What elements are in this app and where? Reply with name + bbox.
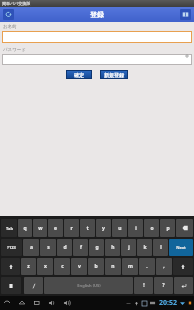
button[interactable]: .: [139, 258, 155, 275]
button[interactable]: h: [105, 239, 120, 256]
staticText: u: [118, 225, 122, 232]
staticText: t: [86, 225, 89, 232]
staticText: お名前: [3, 24, 17, 30]
button[interactable]: [2, 31, 192, 43]
staticText: i: [135, 225, 137, 232]
staticText: o: [150, 225, 154, 232]
button[interactable]: p: [160, 219, 175, 237]
button[interactable]: f: [73, 239, 88, 256]
button[interactable]: i: [128, 219, 143, 237]
staticText: ?123: [7, 245, 16, 250]
button[interactable]: g: [89, 239, 104, 256]
staticText: Tab: [6, 226, 13, 231]
button[interactable]: e: [48, 219, 63, 237]
staticText: n: [111, 263, 115, 270]
button[interactable]: 新規登録: [100, 70, 128, 79]
staticText: パスワード: [3, 47, 26, 53]
button[interactable]: n: [105, 258, 121, 275]
button[interactable]: y: [96, 219, 111, 237]
button[interactable]: x: [37, 258, 53, 275]
staticText: v: [78, 263, 81, 270]
staticText: e: [54, 225, 57, 232]
button[interactable]: ?: [154, 277, 173, 294]
staticText: d: [63, 244, 67, 251]
button[interactable]: ,: [156, 258, 172, 275]
staticText: g: [95, 244, 99, 251]
button[interactable]: l: [153, 239, 168, 256]
button[interactable]: d: [57, 239, 72, 256]
button[interactable]: Tab: [1, 219, 17, 237]
staticText: x: [44, 263, 47, 270]
staticText: 確定: [74, 72, 84, 78]
button[interactable]: 記号: [1, 277, 21, 294]
button[interactable]: English (US): [44, 277, 133, 294]
staticText: r: [70, 225, 73, 232]
staticText: l: [160, 244, 162, 251]
staticText: k: [143, 244, 147, 251]
button[interactable]: 最近: [32, 298, 42, 308]
staticText: b: [94, 263, 98, 270]
staticText: m: [128, 263, 133, 270]
button[interactable]: 言語: [24, 277, 43, 294]
button[interactable]: !: [134, 277, 153, 294]
button[interactable]: a: [23, 239, 39, 256]
staticText: Next: [176, 245, 186, 250]
button[interactable]: 削除: [176, 219, 193, 237]
button[interactable]: v: [71, 258, 87, 275]
staticText: w: [38, 225, 43, 232]
button[interactable]: Shift: [1, 258, 20, 275]
button[interactable]: Enter: [174, 277, 193, 294]
staticText: z: [27, 263, 30, 270]
button[interactable]: Shift: [173, 258, 193, 275]
button[interactable]: w: [33, 219, 47, 237]
button[interactable]: s: [40, 239, 56, 256]
staticText: 新規登録: [104, 72, 124, 78]
button[interactable]: j: [121, 239, 136, 256]
staticText: p: [166, 225, 170, 232]
button[interactable]: ホーム: [17, 298, 27, 308]
staticText: c: [61, 263, 64, 270]
button[interactable]: Next: [169, 239, 193, 256]
staticText: 20:52: [159, 298, 177, 308]
button[interactable]: u: [112, 219, 127, 237]
button[interactable]: 戻る: [2, 298, 12, 308]
staticText: ,: [163, 263, 165, 270]
staticText: h: [111, 244, 115, 251]
button[interactable]: 音量上げる: [62, 298, 72, 308]
button[interactable]: q: [18, 219, 32, 237]
button[interactable]: t: [80, 219, 95, 237]
staticText: s: [47, 244, 50, 251]
button[interactable]: c: [54, 258, 70, 275]
staticText: 登録: [90, 10, 104, 19]
staticText: 簡単パパ交換版: [2, 1, 31, 6]
staticText: y: [102, 225, 105, 232]
button[interactable]: b: [88, 258, 104, 275]
button[interactable]: m: [122, 258, 138, 275]
staticText: a: [30, 244, 33, 251]
button[interactable]: k: [137, 239, 152, 256]
staticText: English (US): [77, 283, 101, 288]
staticText: j: [128, 244, 130, 251]
staticText: f: [80, 244, 82, 251]
button[interactable]: 設定: [180, 9, 191, 20]
button[interactable]: 戻る: [3, 9, 14, 20]
staticText: ?: [162, 282, 165, 289]
staticText: !: [143, 282, 145, 289]
staticText: q: [23, 225, 27, 232]
button[interactable]: o: [144, 219, 159, 237]
button[interactable]: z: [21, 258, 36, 275]
button[interactable]: [2, 54, 192, 65]
button[interactable]: ?123: [1, 239, 22, 256]
button[interactable]: 確定: [66, 70, 92, 79]
button[interactable]: r: [64, 219, 79, 237]
button[interactable]: 音量下げる: [47, 298, 57, 308]
staticText: .: [146, 263, 148, 270]
